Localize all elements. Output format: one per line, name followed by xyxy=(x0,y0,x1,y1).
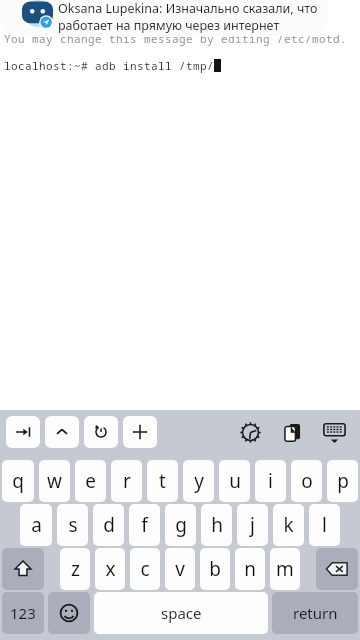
button[interactable]: l xyxy=(309,504,340,546)
staticText: space xyxy=(161,603,202,623)
staticText: r xyxy=(123,468,131,494)
button[interactable]: Emoji xyxy=(48,592,90,634)
staticText: z xyxy=(71,556,80,582)
button[interactable]: h xyxy=(201,504,232,546)
staticText: l xyxy=(322,512,327,538)
button[interactable]: z xyxy=(60,548,90,590)
button[interactable]: 123 xyxy=(2,592,44,634)
button[interactable]: v xyxy=(165,548,195,590)
staticText: работает на прямую через интернет xyxy=(58,17,280,34)
staticText: b xyxy=(209,556,221,582)
staticText: i xyxy=(268,468,273,494)
button[interactable]: o xyxy=(291,460,322,502)
staticText: q xyxy=(12,468,24,494)
button[interactable]: Shift xyxy=(2,548,44,590)
button[interactable]: Settings xyxy=(234,416,266,448)
button[interactable]: f xyxy=(129,504,160,546)
button[interactable]: Arrow keys xyxy=(123,416,157,448)
button[interactable]: Undo xyxy=(84,416,118,448)
staticText: o xyxy=(301,468,313,494)
button[interactable]: m xyxy=(270,548,300,590)
staticText: 123 xyxy=(10,603,36,623)
button[interactable]: p xyxy=(327,460,358,502)
button[interactable]: t xyxy=(147,460,178,502)
staticText: y xyxy=(194,468,204,494)
staticText: m xyxy=(276,556,294,582)
button[interactable]: r xyxy=(111,460,142,502)
staticText: u xyxy=(229,468,241,494)
button[interactable]: q xyxy=(2,460,34,502)
button[interactable]: w xyxy=(39,460,70,502)
staticText: g xyxy=(175,512,187,538)
staticText: n xyxy=(244,556,256,582)
button[interactable]: space xyxy=(94,592,268,634)
staticText: t xyxy=(159,468,166,494)
button[interactable]: s xyxy=(57,504,88,546)
button[interactable]: d xyxy=(93,504,124,546)
button[interactable]: n xyxy=(235,548,265,590)
button[interactable]: e xyxy=(75,460,106,502)
staticText: x xyxy=(105,556,116,582)
staticText: s xyxy=(68,512,78,538)
button[interactable]: Hide keyboard xyxy=(318,416,350,448)
staticText: You may change this message by editing /… xyxy=(4,31,347,46)
button[interactable]: Tab xyxy=(6,416,40,448)
button[interactable]: u xyxy=(219,460,250,502)
button[interactable]: a xyxy=(20,504,52,546)
staticText: k xyxy=(283,512,294,538)
button[interactable]: y xyxy=(183,460,214,502)
staticText: j xyxy=(250,512,255,538)
staticText: d xyxy=(103,512,115,538)
staticText: f xyxy=(141,512,148,538)
staticText: w xyxy=(47,468,62,494)
button[interactable]: k xyxy=(273,504,304,546)
button[interactable]: Paste xyxy=(276,416,308,448)
button[interactable]: Oksana Lupekina: Изначально сказали, что xyxy=(0,0,328,36)
button[interactable]: Backspace xyxy=(316,548,358,590)
button[interactable]: Caret up xyxy=(45,416,79,448)
staticText: a xyxy=(31,512,42,538)
staticText: v xyxy=(175,556,185,582)
staticText: p xyxy=(337,468,349,494)
staticText: return xyxy=(293,603,338,623)
staticText: c xyxy=(140,556,150,582)
button[interactable]: x xyxy=(95,548,125,590)
button[interactable]: j xyxy=(237,504,268,546)
button[interactable]: g xyxy=(165,504,196,546)
button[interactable]: b xyxy=(200,548,230,590)
staticText: localhost:~# adb install /tmp/ xyxy=(4,58,214,73)
staticText: Oksana Lupekina: Изначально сказали, что xyxy=(58,0,318,17)
button[interactable]: return xyxy=(272,592,358,634)
staticText: h xyxy=(211,512,223,538)
staticText: e xyxy=(85,468,96,494)
button[interactable]: c xyxy=(130,548,160,590)
button[interactable]: i xyxy=(255,460,286,502)
